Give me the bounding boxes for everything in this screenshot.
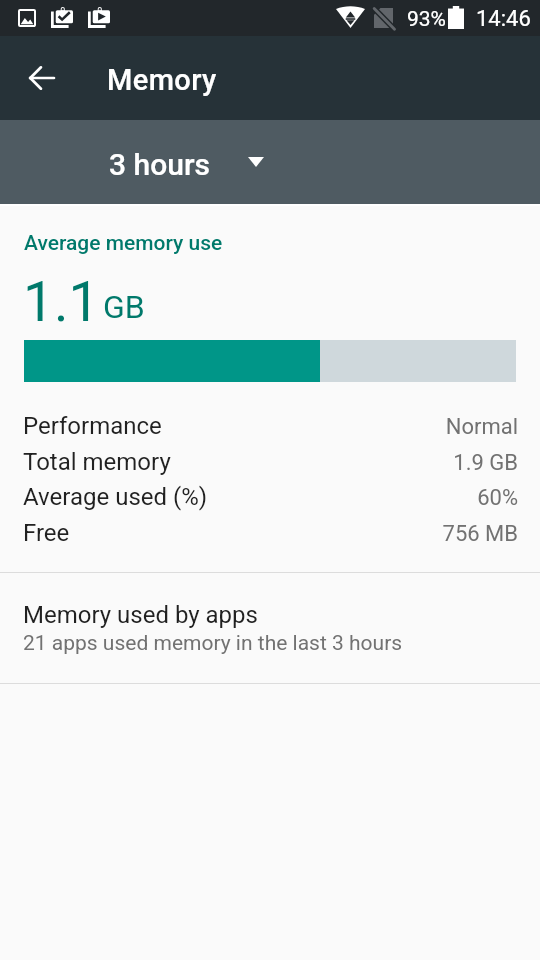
staticText: Average used (%) [23, 483, 208, 511]
staticText: Memory used by apps [23, 601, 258, 629]
button[interactable]: Navigate up [14, 36, 70, 120]
staticText: GB [103, 288, 145, 326]
staticText: Free [23, 519, 70, 547]
button[interactable]: Average used (%) [0, 475, 540, 511]
staticText: 14:46 [476, 6, 531, 32]
staticText: 1.1 [23, 270, 100, 334]
staticText: 93% [407, 7, 446, 32]
button[interactable]: Performance [0, 404, 540, 440]
staticText: 21 apps used memory in the last 3 hours [23, 631, 403, 656]
staticText: Normal [0, 414, 518, 440]
button[interactable]: Total memory [0, 440, 540, 476]
staticText: Average memory use [24, 231, 223, 256]
button[interactable]: 3 hours [96, 134, 280, 190]
staticText: 1.9 GB [0, 450, 518, 476]
button[interactable]: Memory used by apps [0, 573, 540, 683]
staticText: 3 hours [109, 147, 210, 182]
staticText: 756 MB [0, 521, 518, 547]
staticText: 60% [0, 485, 518, 511]
staticText: Total memory [23, 448, 171, 476]
staticText: Memory [107, 63, 217, 97]
button[interactable]: Free [0, 511, 540, 547]
staticText: Performance [23, 412, 162, 440]
